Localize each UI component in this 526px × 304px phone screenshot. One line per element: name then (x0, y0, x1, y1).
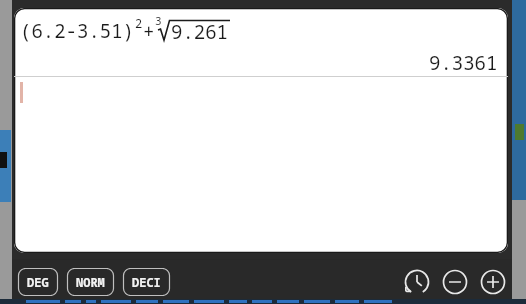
button[interactable]: (6.2-3.51) (14, 8, 508, 253)
button[interactable]: History (402, 267, 432, 297)
staticText: 3 (155, 13, 162, 28)
button[interactable]: DECI (122, 268, 171, 296)
staticText: 9.261 (171, 19, 229, 45)
staticText: (6.2-3.51) (20, 18, 135, 44)
staticText: + (143, 18, 155, 44)
button[interactable]: NORM (66, 268, 115, 296)
staticText: 9.3361 (429, 50, 498, 76)
button[interactable]: Zoom in (478, 267, 508, 297)
staticText: DEG (27, 274, 49, 290)
staticText: 2 (135, 15, 143, 31)
staticText: NORM (76, 274, 105, 290)
staticText: DECI (132, 274, 161, 290)
button[interactable]: Zoom out (440, 267, 470, 297)
button[interactable]: DEG (17, 268, 59, 296)
